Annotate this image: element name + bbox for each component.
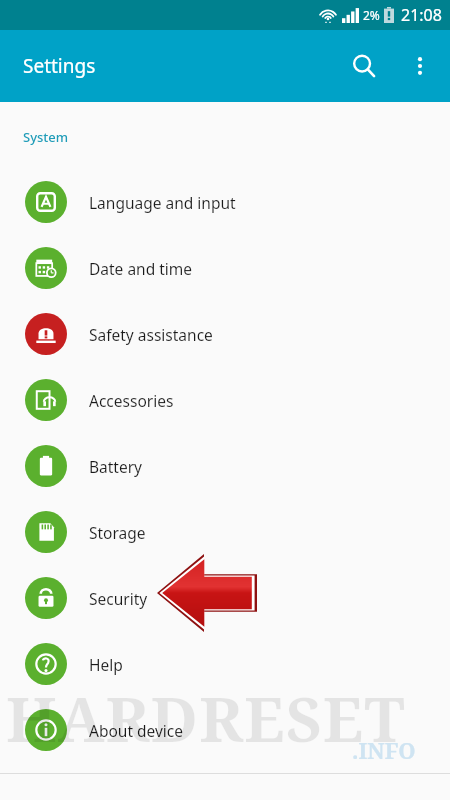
staticText: Accessories bbox=[89, 390, 174, 411]
button[interactable]: Help bbox=[0, 631, 450, 697]
staticText: System bbox=[23, 128, 69, 146]
button[interactable]: Language and input bbox=[0, 169, 450, 235]
staticText: About device bbox=[89, 720, 184, 741]
staticText: HARDRESET bbox=[6, 676, 406, 760]
button[interactable]: Security bbox=[0, 565, 450, 631]
button[interactable]: Date and time bbox=[0, 235, 450, 301]
button[interactable]: Battery bbox=[0, 433, 450, 499]
staticText: Date and time bbox=[89, 258, 193, 279]
button[interactable]: Accessories bbox=[0, 367, 450, 433]
staticText: Help bbox=[89, 654, 123, 675]
button[interactable]: About device bbox=[0, 697, 450, 763]
staticText: Battery bbox=[89, 456, 143, 477]
staticText: Safety assistance bbox=[89, 324, 213, 345]
button[interactable]: Safety assistance bbox=[0, 301, 450, 367]
staticText: 2% bbox=[363, 7, 380, 23]
staticText: 21:08 bbox=[401, 4, 442, 26]
staticText: Language and input bbox=[89, 192, 236, 213]
staticText: Storage bbox=[89, 522, 146, 543]
staticText: .INFO bbox=[352, 735, 416, 765]
staticText: Security bbox=[89, 588, 148, 609]
staticText: Settings bbox=[23, 53, 96, 79]
button[interactable]: More options bbox=[396, 42, 444, 90]
button[interactable]: Storage bbox=[0, 499, 450, 565]
button[interactable]: Search bbox=[340, 42, 388, 90]
